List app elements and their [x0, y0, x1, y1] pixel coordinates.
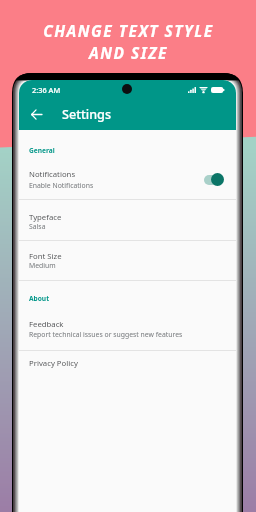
staticText: AND SIZE: [89, 42, 168, 63]
staticText: Font Size: [29, 251, 62, 262]
staticText: Notifications: [29, 169, 76, 180]
button[interactable]: [19, 240, 236, 280]
staticText: Report technical issues or suggest new f…: [29, 330, 183, 339]
staticText: Medium: [29, 261, 56, 270]
staticText: Privacy Policy: [29, 358, 78, 369]
staticText: Typeface: [29, 212, 62, 223]
staticText: Feedback: [29, 319, 64, 330]
staticText: Settings: [62, 106, 112, 123]
staticText: Enable Notifications: [29, 181, 94, 190]
staticText: Salsa: [29, 222, 46, 231]
button[interactable]: [19, 350, 236, 380]
staticText: General: [29, 146, 55, 155]
button[interactable]: Notifications toggle: [204, 173, 223, 186]
button[interactable]: Back: [22, 100, 50, 128]
button[interactable]: [19, 199, 236, 240]
staticText: 2:36 AM: [32, 85, 61, 95]
staticText: About: [29, 294, 49, 303]
button[interactable]: [19, 154, 236, 200]
staticText: CHANGE TEXT STYLE: [43, 20, 214, 41]
button[interactable]: [19, 302, 236, 350]
